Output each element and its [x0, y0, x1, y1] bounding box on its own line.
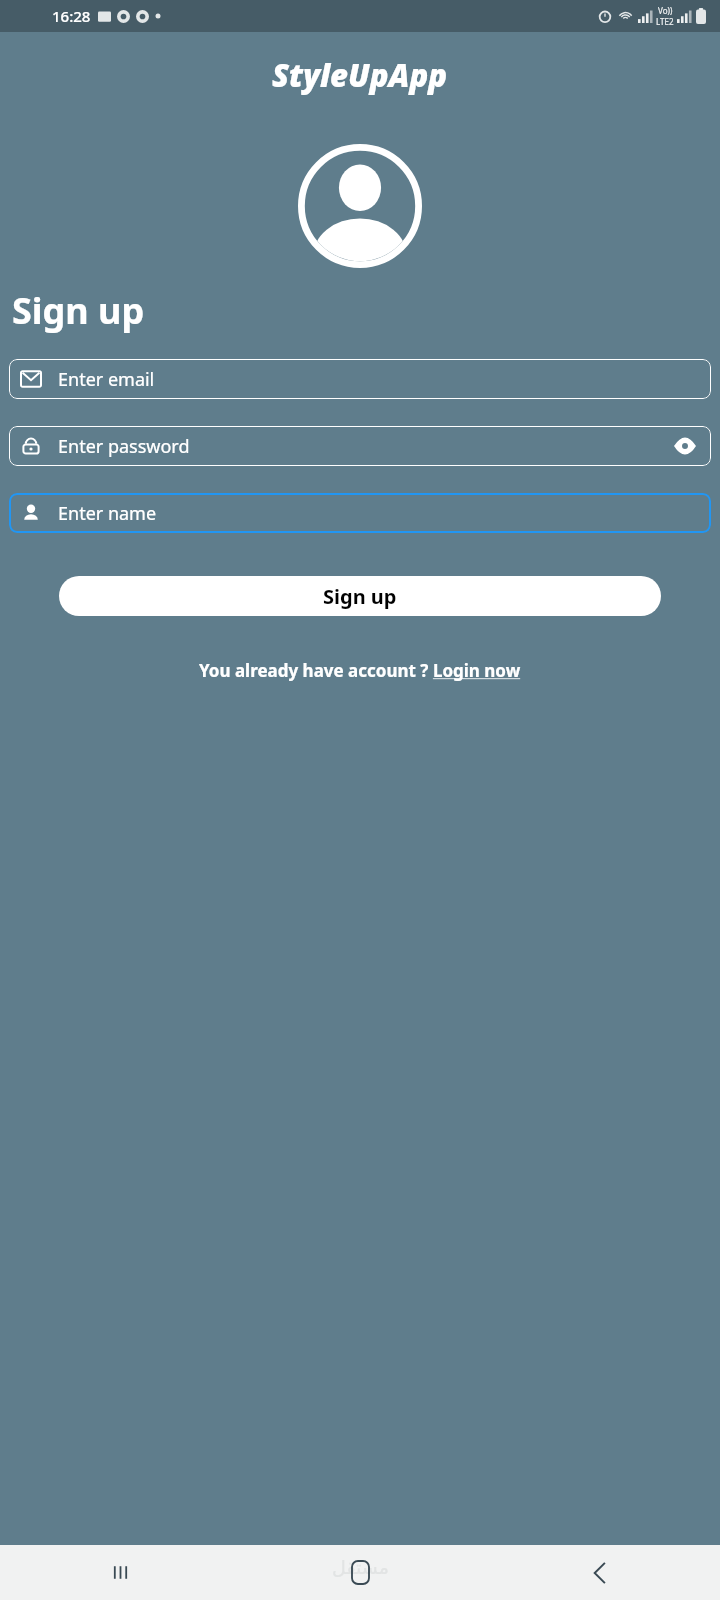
staticText: مستقل: [332, 1556, 389, 1578]
staticText: LTE2: [656, 16, 674, 27]
button[interactable]: Enter email: [9, 359, 711, 399]
button[interactable]: Enter name: [9, 493, 711, 533]
staticText: Sign up: [12, 286, 145, 335]
staticText: Enter email: [58, 367, 699, 392]
staticText: Sign up: [323, 583, 397, 610]
button[interactable]: Back: [480, 1545, 720, 1600]
staticText: Enter password: [58, 434, 671, 459]
staticText: 16:28: [52, 6, 91, 26]
button[interactable]: Enter password: [9, 426, 711, 466]
staticText: StyleUpApp: [272, 54, 448, 96]
button[interactable]: Sign up: [59, 576, 661, 616]
staticText: Enter name: [58, 501, 699, 526]
staticText: Vo)): [658, 5, 673, 16]
button[interactable]: Show password: [671, 432, 699, 460]
staticText: You already have account ? Login now: [199, 659, 521, 682]
button[interactable]: You already have account ? Login now: [0, 659, 720, 682]
button[interactable]: Recent apps: [0, 1545, 240, 1600]
button[interactable]: Home: [240, 1545, 480, 1600]
